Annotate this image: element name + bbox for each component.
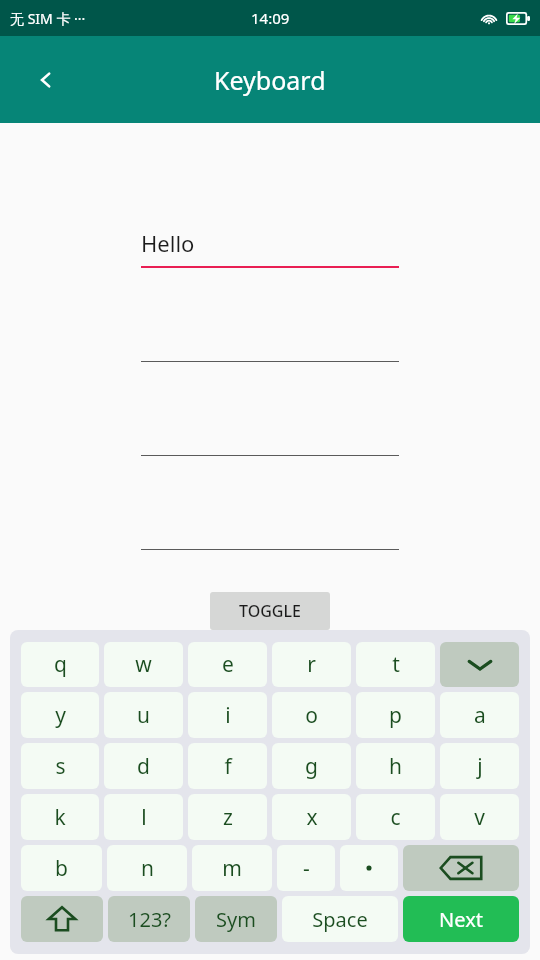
staticText: o (305, 701, 318, 730)
staticText: y (55, 701, 66, 730)
staticText: z (223, 803, 233, 832)
button[interactable] (141, 511, 399, 550)
staticText: m (222, 854, 242, 883)
button[interactable]: i (188, 692, 267, 738)
staticText: b (55, 854, 68, 883)
staticText: TOGGLE (239, 600, 301, 622)
button[interactable]: Hide keyboard (440, 642, 519, 687)
button[interactable]: w (104, 642, 183, 687)
button[interactable]: r (272, 642, 351, 687)
staticText: x (306, 803, 318, 832)
staticText: Space (312, 906, 368, 933)
staticText: f (224, 752, 232, 781)
button[interactable]: u (104, 692, 183, 738)
button[interactable]: d (104, 743, 183, 789)
button[interactable]: s (21, 743, 99, 789)
staticText: e (222, 650, 234, 679)
staticText: n (141, 854, 154, 883)
button[interactable]: b (21, 845, 102, 891)
staticText: p (389, 701, 402, 730)
button[interactable]: v (440, 794, 519, 840)
staticText: c (390, 803, 401, 832)
staticText: 无 SIM 卡 ··· (10, 9, 86, 28)
button[interactable]: Sym (195, 896, 277, 942)
button[interactable]: y (21, 692, 99, 738)
button[interactable]: Backspace (403, 845, 519, 891)
staticText: t (392, 650, 400, 679)
staticText: i (225, 701, 231, 730)
staticText: l (141, 803, 147, 832)
button[interactable]: k (21, 794, 99, 840)
button[interactable]: n (107, 845, 187, 891)
button[interactable]: Hello (141, 228, 399, 268)
staticText: 14:09 (251, 8, 290, 28)
button[interactable]: x (272, 794, 351, 840)
button[interactable]: l (104, 794, 183, 840)
button[interactable]: q (21, 642, 99, 687)
staticText: g (305, 752, 318, 781)
button[interactable]: Back (22, 56, 70, 104)
button[interactable]: - (277, 845, 335, 891)
staticText: r (307, 650, 316, 679)
staticText: a (474, 701, 486, 730)
staticText: w (135, 650, 152, 679)
button[interactable] (141, 417, 399, 456)
staticText: h (389, 752, 402, 781)
staticText: q (54, 650, 67, 679)
staticText: k (54, 803, 66, 832)
staticText: - (303, 854, 310, 883)
button[interactable]: f (188, 743, 267, 789)
button[interactable]: t (356, 642, 435, 687)
staticText: v (474, 803, 485, 832)
button[interactable] (340, 845, 398, 891)
staticText: d (137, 752, 150, 781)
button[interactable]: j (440, 743, 519, 789)
staticText: Next (439, 906, 483, 933)
staticText: Sym (216, 906, 256, 933)
button[interactable]: Space (282, 896, 398, 942)
button[interactable]: Next (403, 896, 519, 942)
button[interactable]: c (356, 794, 435, 840)
button[interactable]: z (188, 794, 267, 840)
button[interactable]: o (272, 692, 351, 738)
staticText: s (55, 752, 66, 781)
button[interactable]: Shift (21, 896, 103, 942)
button[interactable]: a (440, 692, 519, 738)
staticText: Keyboard (214, 63, 326, 97)
button[interactable]: 123? (108, 896, 190, 942)
button[interactable]: h (356, 743, 435, 789)
button[interactable]: m (192, 845, 272, 891)
button[interactable]: p (356, 692, 435, 738)
staticText: 123? (128, 906, 171, 933)
button[interactable]: e (188, 642, 267, 687)
staticText: Hello (141, 228, 195, 258)
staticText: u (137, 701, 150, 730)
staticText: j (477, 752, 483, 781)
button[interactable]: TOGGLE (210, 592, 330, 630)
button[interactable] (141, 323, 399, 362)
button[interactable]: g (272, 743, 351, 789)
